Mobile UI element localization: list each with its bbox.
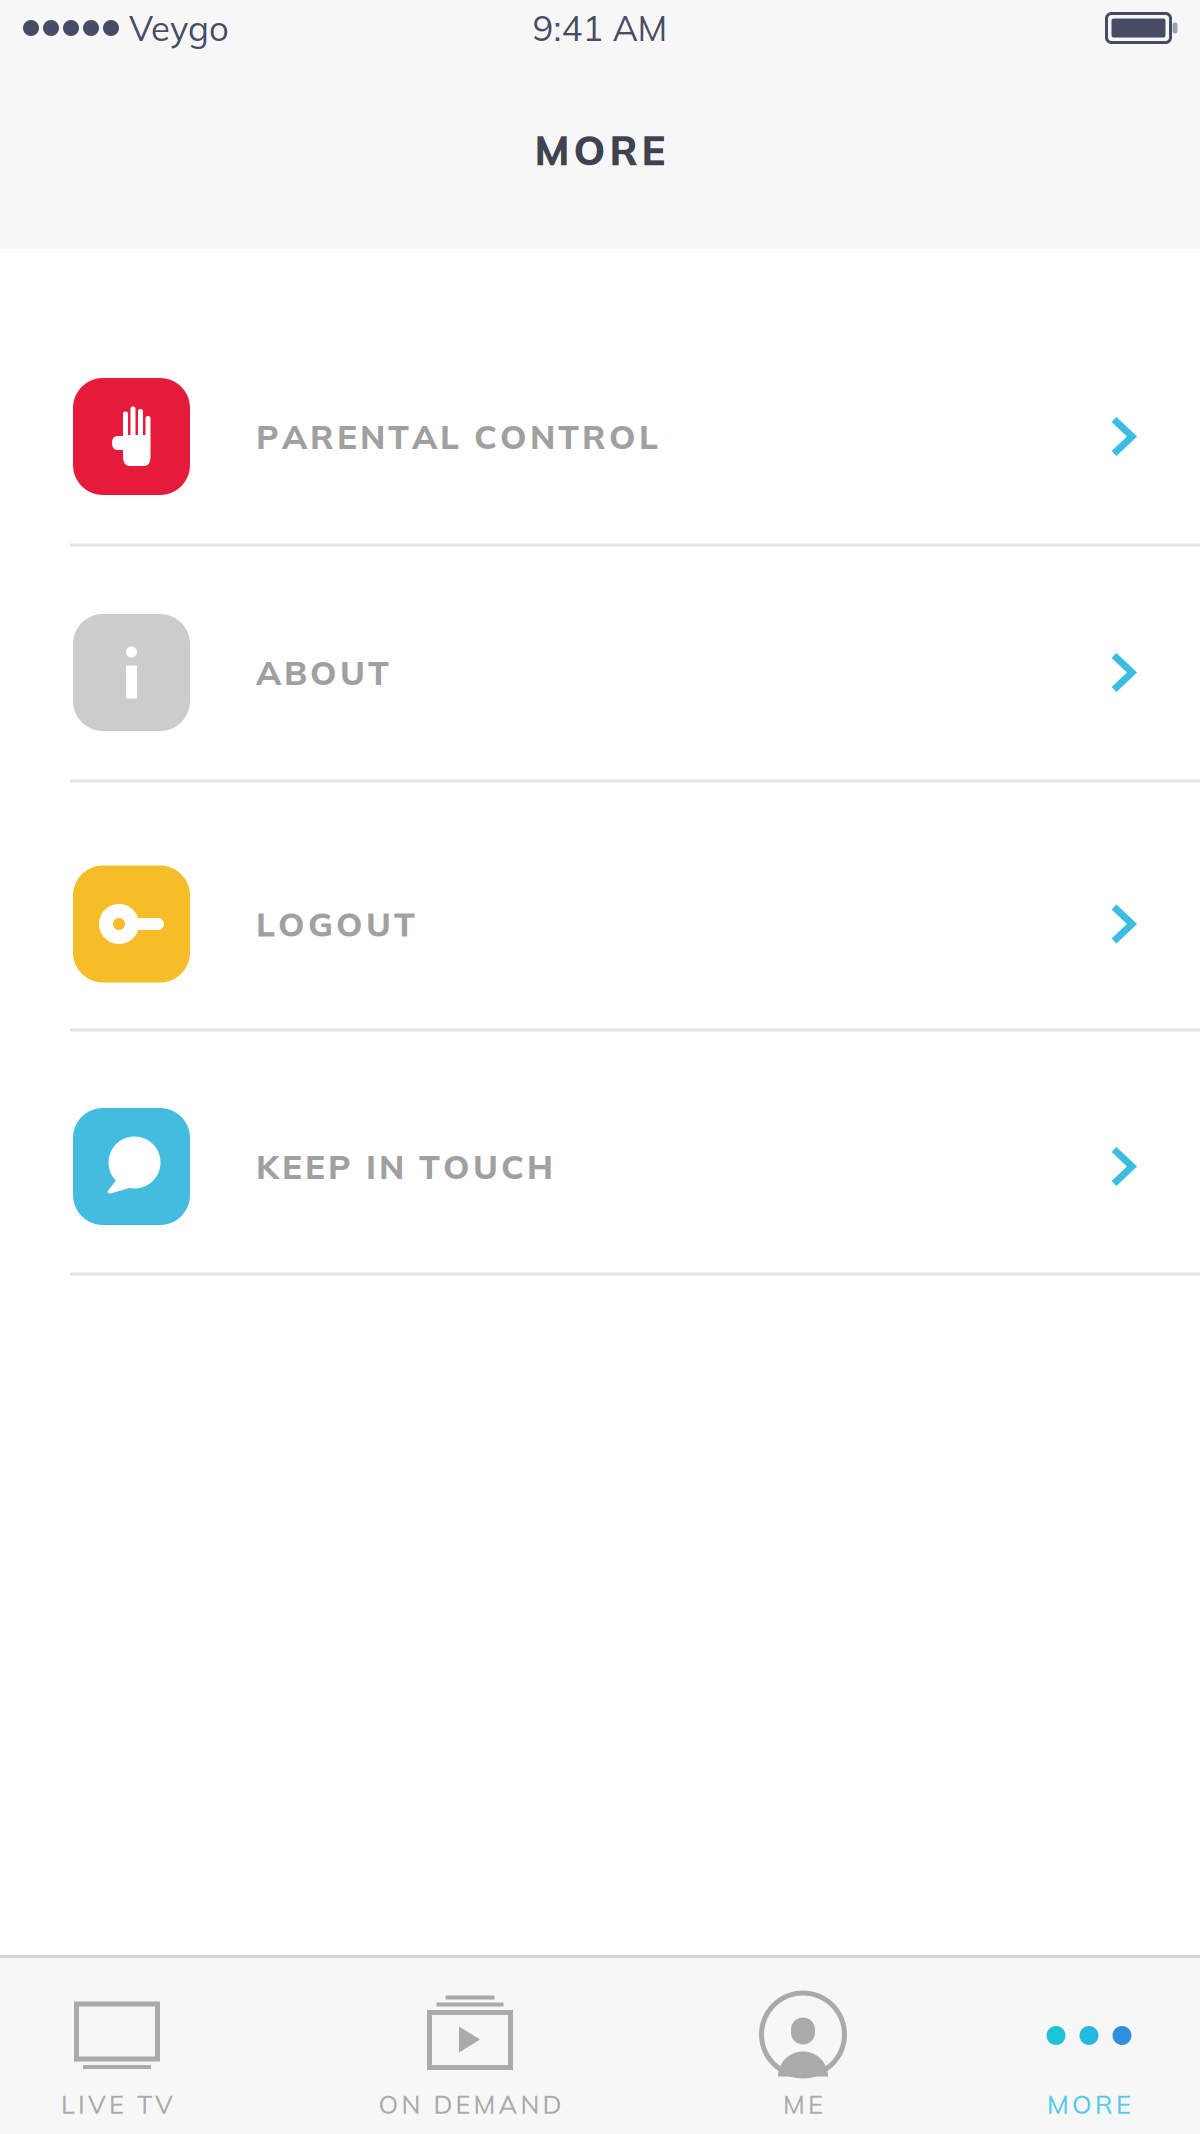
staticText: Veygo xyxy=(129,6,229,50)
staticText: P A R E N T A L C O N T R O L xyxy=(256,416,658,457)
button[interactable]: L O G O U T xyxy=(0,782,1200,1031)
staticText: M E xyxy=(783,2088,823,2120)
button[interactable]: L I V E T V xyxy=(0,1958,300,2134)
staticText: L O G O U T xyxy=(256,903,415,945)
staticText: M O R E xyxy=(1047,2088,1131,2120)
button[interactable]: O N D E M A N D xyxy=(300,1958,600,2134)
button[interactable]: M O R E xyxy=(900,1958,1200,2134)
button[interactable]: P A R E N T A L C O N T R O L xyxy=(0,249,1200,546)
staticText: O N D E M A N D xyxy=(378,2088,561,2120)
button[interactable]: K E E P I N T O U C H xyxy=(0,1031,1200,1275)
staticText: M O R E xyxy=(534,125,665,175)
staticText: 9:41 AM xyxy=(532,6,667,50)
staticText: A B O U T xyxy=(256,652,389,693)
staticText: L I V E T V xyxy=(61,2088,173,2120)
staticText: K E E P I N T O U C H xyxy=(256,1146,553,1187)
button[interactable]: M E xyxy=(600,1958,900,2134)
button[interactable]: A B O U T xyxy=(0,546,1200,782)
